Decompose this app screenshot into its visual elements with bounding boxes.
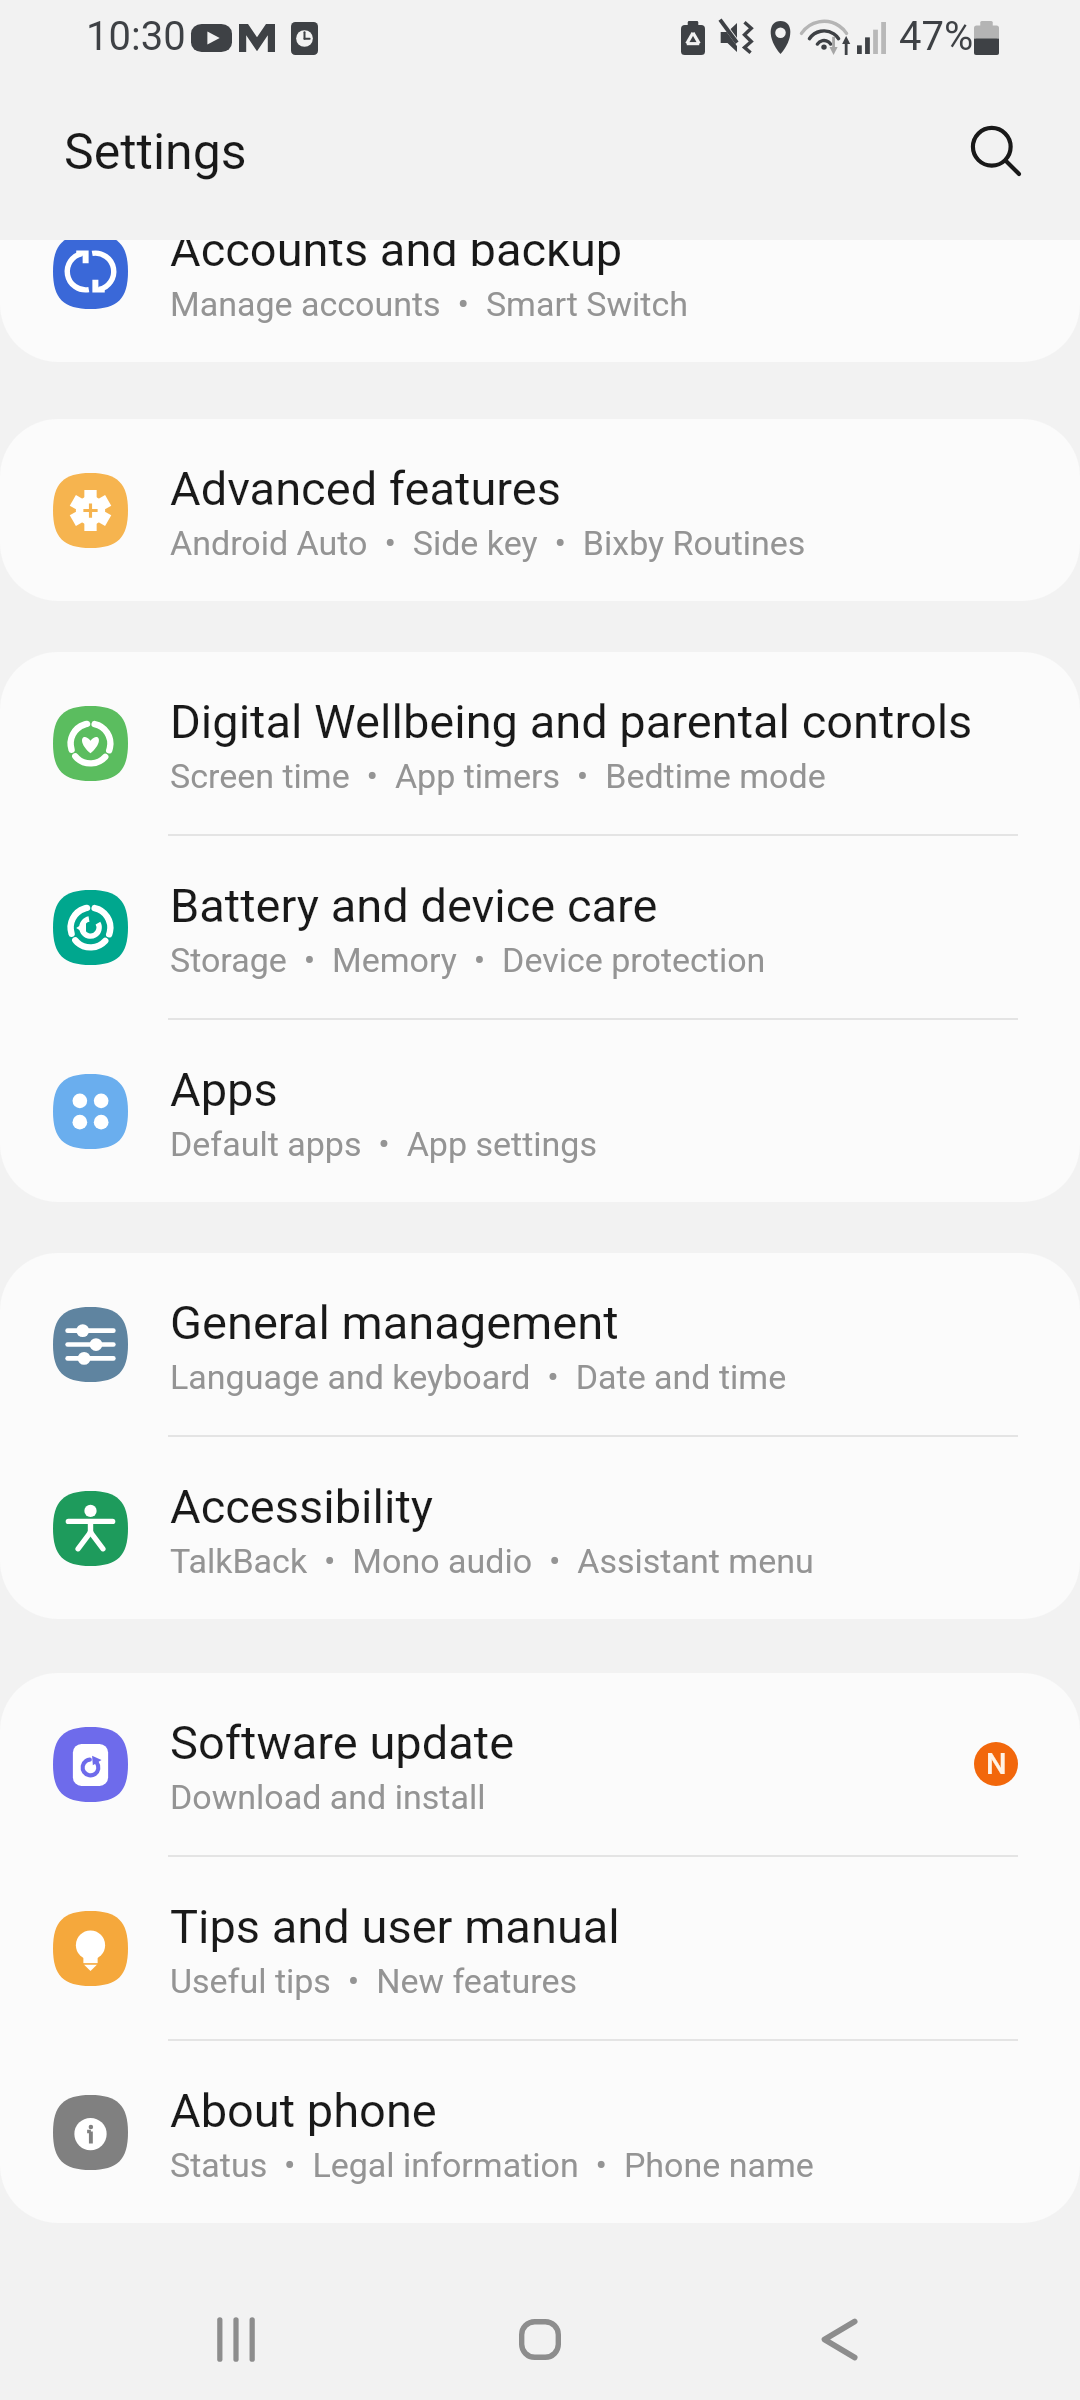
button[interactable]: General management [0,1253,1080,1435]
staticText: About phone [170,2083,437,2138]
button[interactable]: Software update [0,1673,1080,1855]
button[interactable]: Battery and device care [0,836,1080,1018]
staticText: Settings [64,123,247,182]
staticText: Apps [170,1062,278,1117]
staticText: Accessibility [170,1479,434,1534]
button[interactable]: Digital Wellbeing and parental controls [0,652,1080,834]
staticText: Storage • Memory • Device protection [170,940,766,980]
staticText: Digital Wellbeing and parental controls [170,694,973,749]
staticText: 47% [899,13,974,60]
staticText: TalkBack • Mono audio • Assistant menu [170,1541,814,1581]
button[interactable]: About phone [0,2041,1080,2223]
staticText: N [986,1747,1007,1781]
staticText: Accounts and backup [170,222,623,277]
staticText: Android Auto • Side key • Bixby Routines [170,523,806,563]
staticText: Manage accounts • Smart Switch [170,284,688,324]
button[interactable]: Advanced features [0,419,1080,601]
staticText: Tips and user manual [170,1899,620,1954]
staticText: Language and keyboard • Date and time [170,1357,787,1397]
button[interactable]: Back [780,2279,900,2399]
button[interactable]: Accessibility [0,1437,1080,1619]
staticText: Software update [170,1715,515,1770]
staticText: Battery and device care [170,878,658,933]
staticText: Status • Legal information • Phone name [170,2145,814,2185]
button[interactable]: Apps [0,1020,1080,1202]
staticText: Screen time • App timers • Bedtime mode [170,756,826,796]
staticText: Default apps • App settings [170,1124,597,1164]
staticText: Download and install [170,1777,486,1817]
button[interactable]: Recent apps [176,2279,296,2399]
staticText: Useful tips • New features [170,1961,577,2001]
button[interactable]: Accounts and backup [0,180,1080,362]
button[interactable]: Search [945,100,1049,204]
staticText: Advanced features [170,461,562,516]
staticText: General management [170,1295,619,1350]
button[interactable]: Home [480,2279,600,2399]
staticText: 10:30 [86,13,186,60]
button[interactable]: Tips and user manual [0,1857,1080,2039]
